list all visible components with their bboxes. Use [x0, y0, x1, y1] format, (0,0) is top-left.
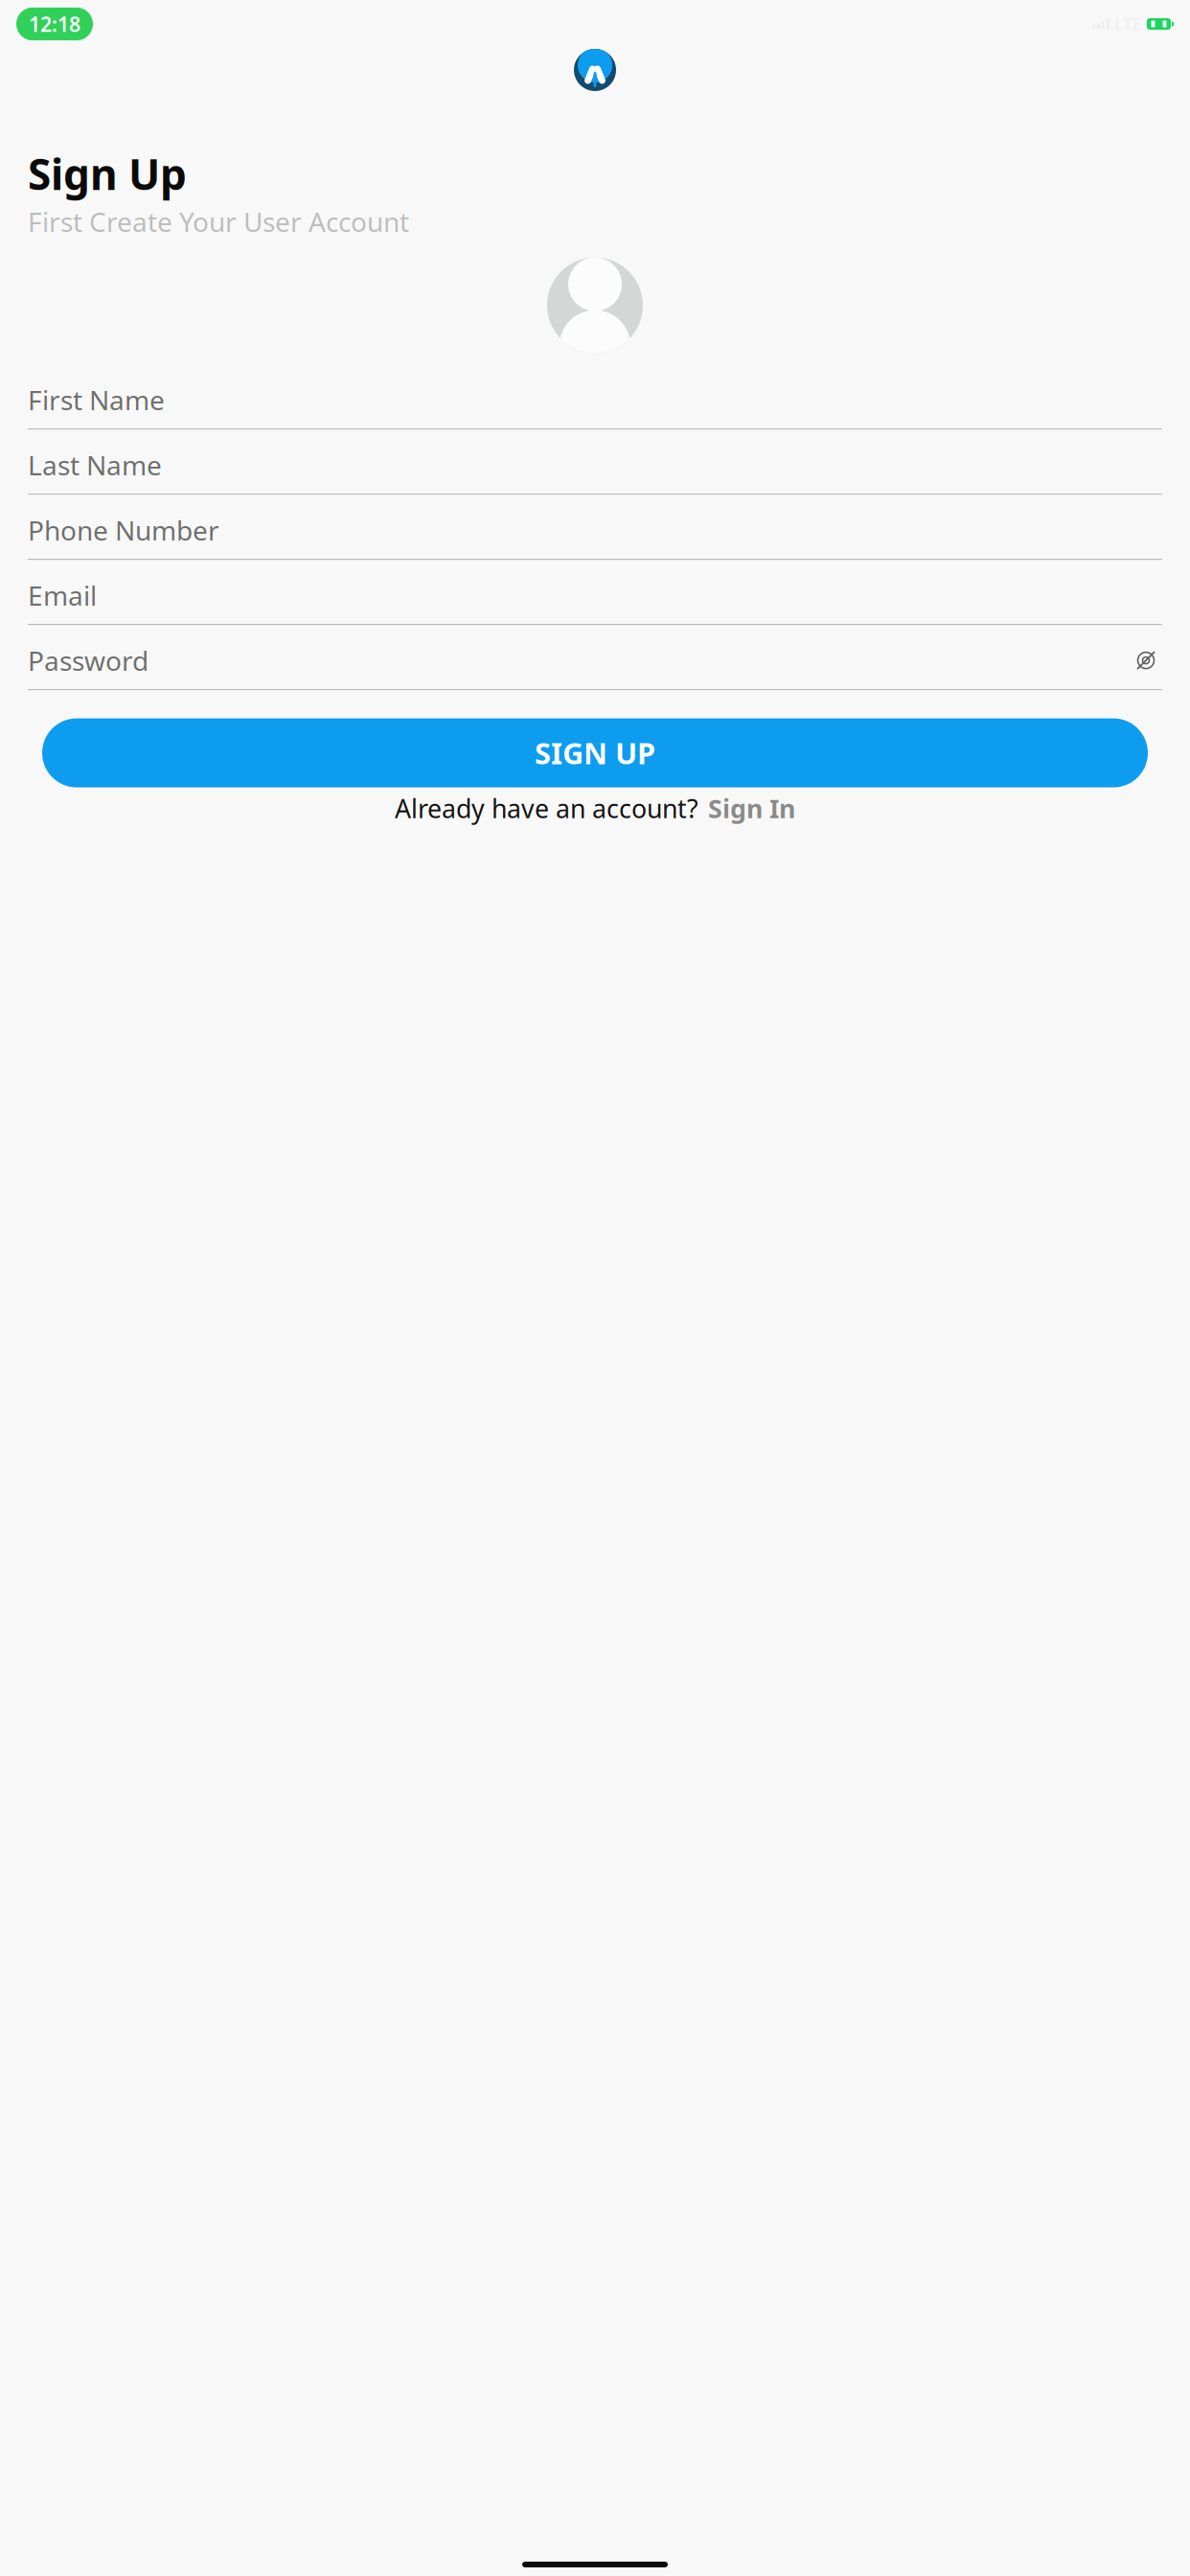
staticText: Sign Up [28, 146, 187, 202]
staticText: SIGN UP [535, 733, 655, 772]
button[interactable]: Sign In [708, 791, 795, 825]
staticText: Last Name [28, 447, 162, 483]
button[interactable]: SIGN UP [42, 718, 1148, 787]
staticText: Phone Number [28, 512, 219, 548]
staticText: Sign In [708, 791, 795, 825]
staticText: 12:18 [29, 10, 80, 37]
staticText: Email [28, 577, 97, 613]
staticText: Password [28, 643, 149, 678]
staticText: First Create Your User Account [28, 204, 409, 239]
button[interactable]: Add profile photo [547, 257, 643, 353]
staticText: First Name [28, 382, 165, 418]
staticText: Already have an account? [395, 791, 698, 825]
button[interactable]: Show password [1130, 644, 1162, 677]
